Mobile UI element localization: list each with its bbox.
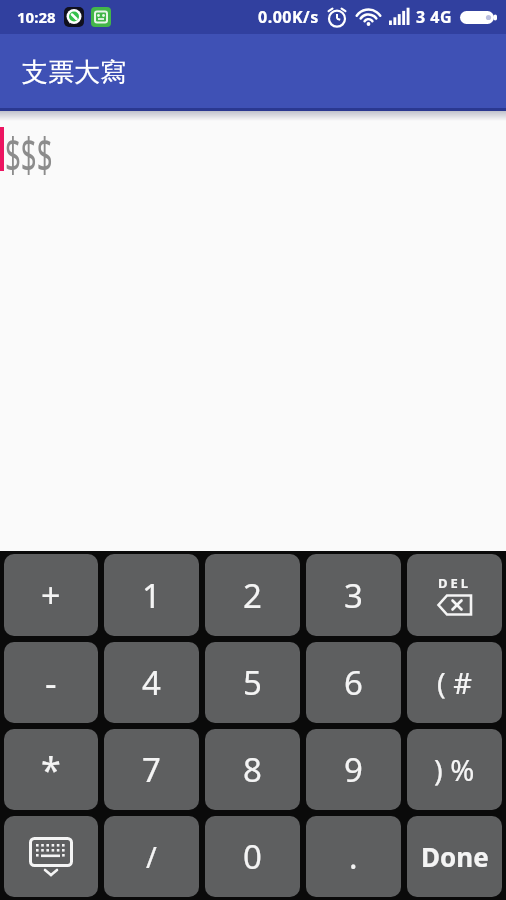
staticText: 9 <box>344 747 363 792</box>
staticText: 5 <box>243 660 262 705</box>
staticText: - <box>45 658 57 707</box>
staticText: / <box>146 837 157 876</box>
button[interactable]: * <box>4 729 98 810</box>
button[interactable]: 9 <box>306 729 401 810</box>
staticText: 0 <box>243 834 262 879</box>
staticText: 0.00K/s <box>258 6 319 28</box>
staticText: 3 <box>344 573 363 618</box>
button[interactable]: 7 <box>104 729 199 810</box>
button[interactable]: 2 <box>205 554 300 636</box>
staticText: 1 <box>142 573 161 618</box>
button[interactable]: Done <box>407 816 502 897</box>
staticText: 6 <box>344 660 363 705</box>
staticText: $$$ <box>5 121 53 185</box>
button[interactable]: 8 <box>205 729 300 810</box>
button[interactable]: / <box>104 816 199 897</box>
staticText: 3 4G <box>416 6 453 28</box>
button[interactable]: ( # <box>407 642 502 723</box>
button[interactable]: 0 <box>205 816 300 897</box>
staticText: 4 <box>142 660 161 705</box>
staticText: DEL <box>438 574 472 592</box>
staticText: 7 <box>142 747 161 792</box>
button[interactable]: 1 <box>104 554 199 636</box>
staticText: . <box>349 835 358 879</box>
button[interactable]: 4 <box>104 642 199 723</box>
staticText: + <box>41 572 61 618</box>
button[interactable]: . <box>306 816 401 897</box>
staticText: ( # <box>437 663 472 702</box>
staticText: 8 <box>243 747 262 792</box>
staticText: Done <box>421 839 489 874</box>
staticText: 支票大寫 <box>22 56 126 89</box>
staticText: ) % <box>434 750 475 789</box>
button[interactable]: 6 <box>306 642 401 723</box>
button[interactable]: 3 <box>306 554 401 636</box>
staticText: * <box>41 745 61 794</box>
button[interactable]: ) % <box>407 729 502 810</box>
button[interactable]: + <box>4 554 98 636</box>
staticText: 10:28 <box>17 7 56 27</box>
button[interactable]: - <box>4 642 98 723</box>
staticText: 2 <box>243 573 262 618</box>
button[interactable] <box>4 816 98 897</box>
button[interactable]: DEL <box>407 554 502 636</box>
button[interactable]: 5 <box>205 642 300 723</box>
